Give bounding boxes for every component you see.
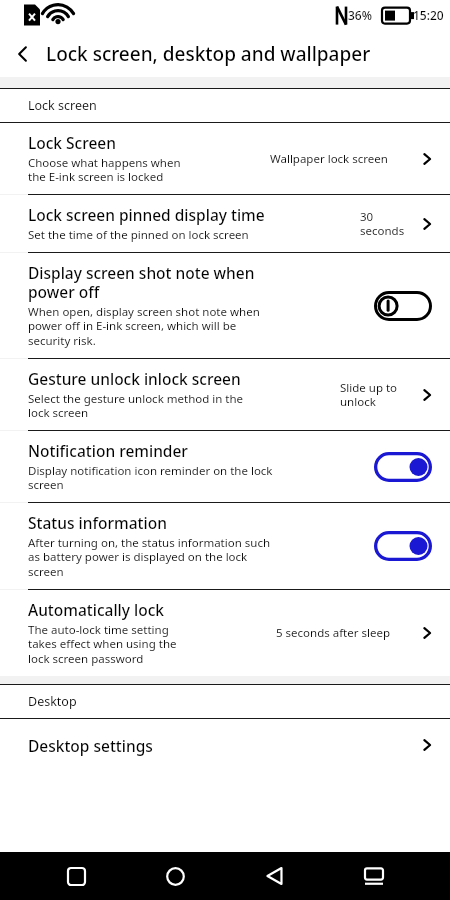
button[interactable]: Status information <box>0 503 450 589</box>
staticText: Slide up to unlock <box>340 380 398 410</box>
staticText: 15:20 <box>413 7 444 23</box>
staticText: The auto-lock time setting takes effect … <box>28 622 270 667</box>
button[interactable]: Back <box>0 31 46 77</box>
staticText: Display screen shot note when power off <box>28 262 374 302</box>
button[interactable]: Back <box>251 852 299 900</box>
staticText: Status information <box>28 512 374 533</box>
button[interactable]: Lock Screen <box>0 123 450 194</box>
staticText: When open, display screen shot note when… <box>28 304 374 349</box>
staticText: Choose what happens when the E-ink scree… <box>28 155 264 185</box>
staticText: Lock Screen <box>28 132 264 153</box>
button[interactable]: Gesture unlock inlock screen <box>0 359 450 430</box>
staticText: Display notification icon reminder on th… <box>28 463 374 493</box>
button[interactable]: Desktop settings <box>0 719 450 771</box>
staticText: Select the gesture unlock method in the … <box>28 391 334 421</box>
staticText: Notification reminder <box>28 440 374 461</box>
staticText: Lock screen pinned display time <box>28 204 354 225</box>
staticText: Gesture unlock inlock screen <box>28 368 334 389</box>
button[interactable]: Home <box>151 852 199 900</box>
staticText: 36% <box>348 7 372 23</box>
button[interactable]: Notification reminder <box>0 431 450 502</box>
button[interactable]: Automatically lock <box>0 590 450 676</box>
staticText: Set the time of the pinned on lock scree… <box>28 227 354 243</box>
staticText: 5 seconds after sleep <box>276 625 391 641</box>
button[interactable]: Split screen <box>350 852 398 900</box>
button[interactable]: Display screen shot note when power off <box>0 253 450 358</box>
staticText: Lock screen, desktop and wallpaper <box>46 41 371 67</box>
staticText: Desktop settings <box>28 735 416 756</box>
staticText: Wallpaper lock screen <box>270 151 388 167</box>
staticText: Lock screen <box>28 97 97 114</box>
staticText: After turning on, the status information… <box>28 535 374 580</box>
staticText: Desktop <box>28 693 77 710</box>
button[interactable]: Recent apps <box>52 852 100 900</box>
staticText: Automatically lock <box>28 599 270 620</box>
button[interactable]: Lock screen pinned display time <box>0 195 450 252</box>
staticText: 30 seconds <box>360 209 405 239</box>
